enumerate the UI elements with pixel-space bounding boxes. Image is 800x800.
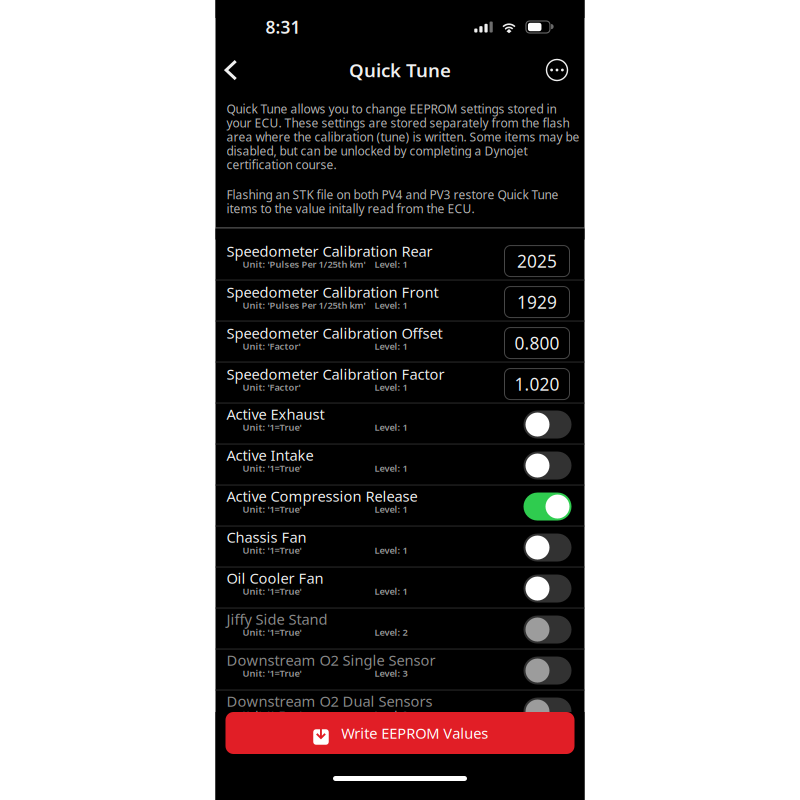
staticText: Unit: 'Pulses Per 1/25th km' [242,258,365,270]
staticText: 8:31 [265,15,300,38]
staticText: Active Intake [226,445,313,465]
staticText: Unit: '1=True' [242,421,301,433]
staticText: Write EEPROM Values [341,723,488,743]
staticText: Level: 2 [374,626,407,638]
staticText: 0.800 [514,331,559,354]
button[interactable]: Active Compression Release [215,485,584,525]
staticText: Jiffy Side Stand [226,609,327,629]
staticText: Active Exhaust [226,404,324,424]
staticText: 2025 [517,249,557,272]
staticText: Level: 3 [374,667,407,679]
button[interactable]: Oil Cooler Fan [215,567,584,607]
button[interactable]: More options [536,48,567,92]
staticText: Unit: '1=True' [242,626,301,638]
staticText: Speedometer Calibration Rear [226,241,432,261]
button[interactable]: Active Intake [215,444,584,484]
staticText: Level: 1 [374,340,407,352]
button[interactable]: Speedometer Calibration Factor [215,362,584,402]
staticText: Level: 1 [374,503,407,515]
staticText: Level: 1 [374,421,407,433]
button[interactable]: Chassis Fan [215,526,584,566]
staticText: Unit: 'Factor' [242,340,300,352]
staticText: Flashing an STK file on both PV4 and PV3… [226,187,558,217]
button[interactable]: Downstream O2 Dual Sensors [215,690,584,730]
button[interactable]: Back [224,48,255,92]
staticText: Oil Cooler Fan [226,568,323,588]
staticText: Unit: '1=True' [242,585,301,597]
staticText: Level: 1 [374,585,407,597]
staticText: Unit: '1=True' [242,544,301,556]
staticText: Speedometer Calibration Factor [226,364,444,384]
staticText: Level: 1 [374,299,407,311]
button[interactable]: Speedometer Calibration Rear [215,239,584,279]
staticText: Unit: 'Factor' [242,381,300,393]
button[interactable]: Speedometer Calibration Front [215,280,584,320]
button[interactable]: Write EEPROM Values [225,712,574,754]
staticText: Unit: '1=True' [242,708,301,720]
button[interactable]: Speedometer Calibration Offset [215,321,584,361]
staticText: Unit: 'Pulses Per 1/25th km' [242,299,365,311]
staticText: Active Compression Release [226,486,417,506]
staticText: Downstream O2 Dual Sensors [226,691,432,711]
staticText: Level: 1 [374,462,407,474]
staticText: 1929 [517,290,557,313]
staticText: Level: 1 [374,544,407,556]
button[interactable]: Downstream O2 Single Sensor [215,649,584,689]
staticText: Downstream O2 Single Sensor [226,650,435,670]
staticText: Quick Tune [349,58,451,82]
button[interactable]: Jiffy Side Stand [215,608,584,648]
staticText: Unit: '1=True' [242,667,301,679]
staticText: Quick Tune allows you to change EEPROM s… [226,101,579,173]
staticText: Chassis Fan [226,527,306,547]
staticText: Level: 1 [374,381,407,393]
staticText: Speedometer Calibration Front [226,282,438,302]
staticText: Level: 1 [374,258,407,270]
button[interactable]: Active Exhaust [215,403,584,443]
staticText: Level: 3 [374,708,407,720]
staticText: Unit: '1=True' [242,503,301,515]
staticText: Unit: '1=True' [242,462,301,474]
staticText: Speedometer Calibration Offset [226,323,442,343]
staticText: 1.020 [514,372,559,395]
